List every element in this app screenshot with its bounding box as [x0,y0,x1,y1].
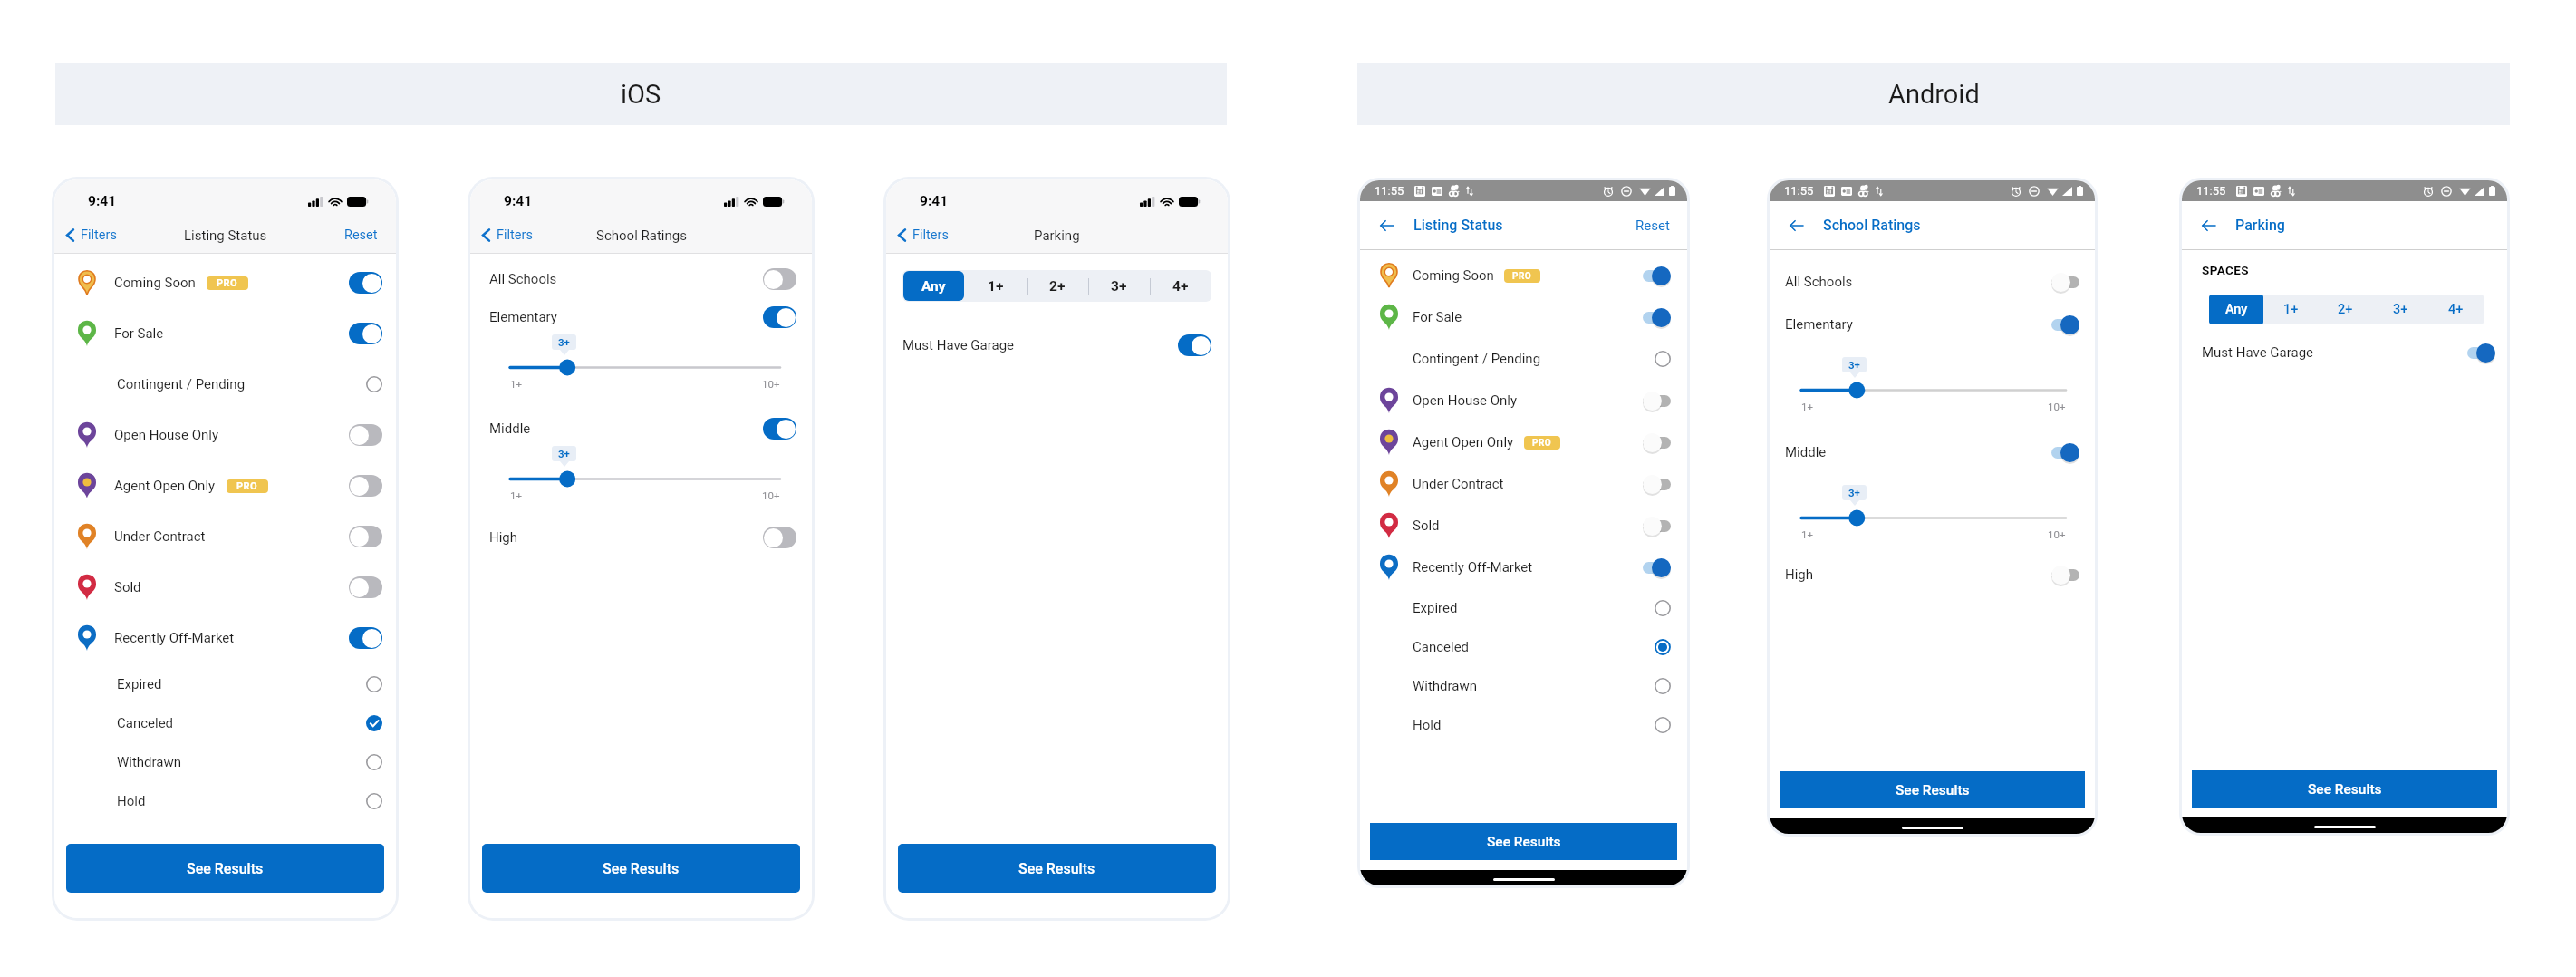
button[interactable] [349,475,382,497]
button[interactable]: Sold [1380,505,1671,547]
staticText: Contingent / Pending [1413,351,1541,367]
button[interactable]: Reset [344,227,378,243]
button[interactable]: Back [2201,218,2217,234]
button[interactable]: High [1785,560,2079,589]
button[interactable] [349,424,382,446]
staticText: Open House Only [1413,392,1517,409]
button[interactable] [349,323,382,344]
button[interactable] [1643,308,1671,327]
button[interactable]: Must Have Garage [2202,339,2495,366]
button[interactable] [763,268,796,290]
button[interactable]: Any [903,271,964,301]
button[interactable] [763,306,796,328]
staticText: Recently Off-Market [1413,559,1533,576]
button[interactable]: Reset [1635,218,1670,234]
button[interactable]: 1+ [2263,295,2318,324]
button[interactable]: Back [1789,218,1805,234]
button[interactable]: Withdrawn [1380,666,1671,705]
button[interactable]: Middle [489,414,796,443]
button[interactable] [2051,315,2079,334]
button[interactable]: Elementary [489,303,796,332]
button[interactable]: Coming Soon [1380,255,1671,296]
button[interactable]: All Schools [1785,267,2079,296]
button[interactable]: Any [2209,295,2263,324]
button[interactable]: Filters [63,227,117,243]
staticText: Coming Soon [114,275,196,291]
button[interactable]: Canceled [1380,627,1671,666]
button[interactable]: Expired [1380,588,1671,627]
button[interactable] [1643,558,1671,577]
button[interactable]: Filters [478,227,533,243]
button[interactable]: See Results [1780,771,2085,808]
button[interactable] [763,527,796,548]
button[interactable] [349,576,382,598]
button[interactable]: Expired [78,664,382,703]
button[interactable] [1643,392,1671,411]
button[interactable]: Back [1379,218,1395,234]
button[interactable]: For Sale [1380,296,1671,338]
button[interactable] [2051,273,2079,292]
button[interactable]: High [489,523,796,552]
button[interactable] [1655,639,1671,655]
button[interactable]: Agent Open Only [1380,421,1671,463]
button[interactable]: See Results [898,844,1216,893]
button[interactable] [349,272,382,294]
button[interactable] [2467,343,2495,363]
button[interactable]: Open House Only [1380,380,1671,421]
button[interactable] [1643,475,1671,494]
staticText: Middle [1785,444,1827,460]
button[interactable] [1655,678,1671,694]
button[interactable]: Agent Open Only [78,460,382,511]
button[interactable]: 4+ [1150,270,1211,302]
button[interactable] [2051,566,2079,585]
button[interactable] [366,793,382,809]
button[interactable]: Open House Only [78,410,382,460]
button[interactable]: For Sale [78,308,382,359]
button[interactable]: Recently Off-Market [1380,547,1671,588]
button[interactable]: 2+ [1027,270,1088,302]
button[interactable]: Under Contract [1380,463,1671,505]
button[interactable]: Contingent / Pending [78,359,382,410]
button[interactable] [1655,351,1671,367]
button[interactable]: See Results [482,844,800,893]
button[interactable]: 3+ [2373,295,2428,324]
button[interactable]: 1+ [965,270,1027,302]
button[interactable]: Contingent / Pending [1380,338,1671,380]
button[interactable] [366,754,382,770]
button[interactable] [366,715,382,731]
button[interactable]: 2+ [2318,295,2373,324]
staticText: Canceled [1413,639,1470,655]
button[interactable]: Filters [894,227,949,243]
button[interactable]: Recently Off-Market [78,613,382,663]
button[interactable]: All Schools [489,265,796,294]
button[interactable]: Middle [1785,438,2079,467]
staticText: Withdrawn [117,754,182,770]
button[interactable] [366,676,382,692]
button[interactable] [2051,443,2079,462]
button[interactable]: Under Contract [78,511,382,562]
button[interactable]: Coming Soon [78,257,382,308]
button[interactable]: Canceled [78,703,382,742]
button[interactable] [1655,717,1671,733]
button[interactable] [349,627,382,649]
staticText: Listing Status [1413,217,1503,234]
button[interactable]: Withdrawn [78,742,382,781]
button[interactable] [763,418,796,440]
button[interactable]: Sold [78,562,382,613]
button[interactable]: 4+ [2428,295,2484,324]
button[interactable] [1178,334,1211,356]
button[interactable]: Must Have Garage [902,331,1211,360]
button[interactable]: 3+ [1088,270,1150,302]
button[interactable]: See Results [1370,823,1677,860]
button[interactable]: Hold [78,781,382,820]
button[interactable]: Hold [1380,705,1671,744]
button[interactable] [366,376,382,392]
button[interactable] [1643,266,1671,285]
button[interactable] [1643,433,1671,452]
button[interactable] [1655,600,1671,616]
button[interactable]: See Results [66,844,384,893]
button[interactable] [1643,517,1671,536]
button[interactable] [349,526,382,547]
button[interactable]: See Results [2192,770,2497,808]
button[interactable]: Elementary [1785,310,2079,339]
